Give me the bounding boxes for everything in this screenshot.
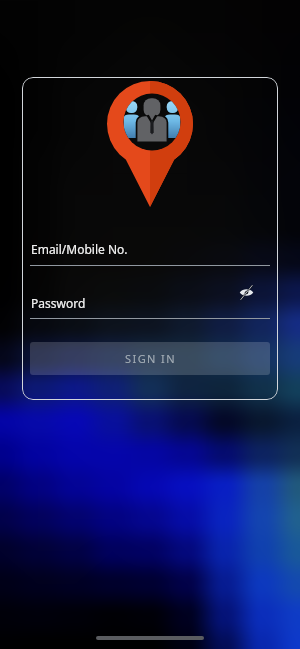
staticText: SIGN IN [125,351,176,366]
staticText: Password [31,295,86,311]
staticText: Email/Mobile No. [31,241,128,257]
button[interactable]: SIGN IN [30,342,270,375]
button[interactable]: Show password [233,279,259,305]
